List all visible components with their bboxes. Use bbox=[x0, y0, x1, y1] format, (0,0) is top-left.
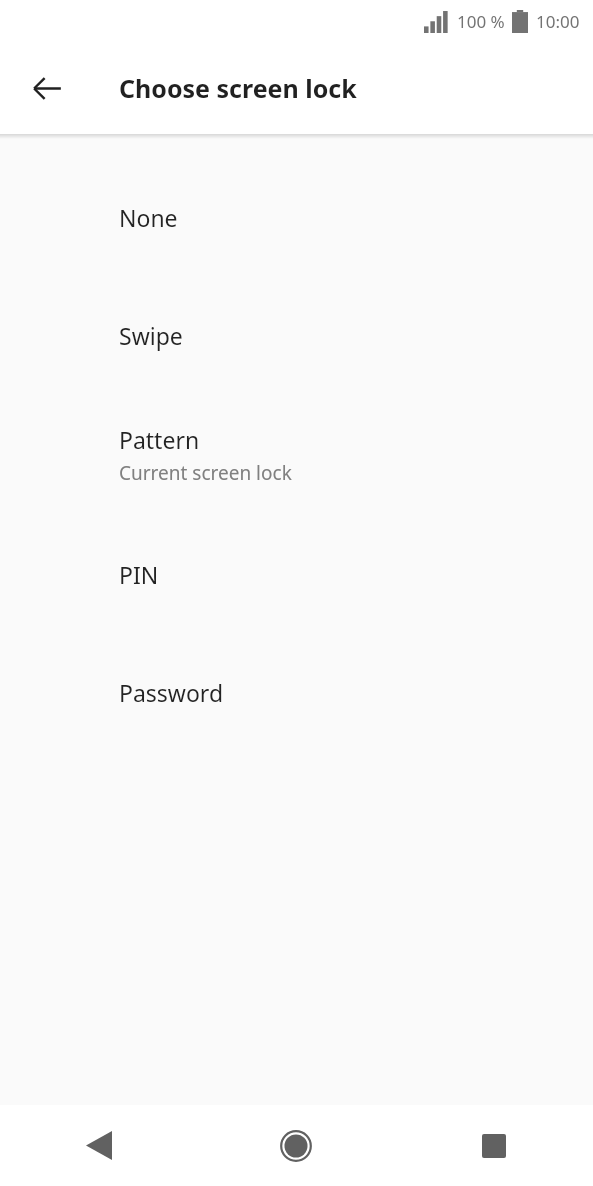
button[interactable]: Home bbox=[197, 1105, 395, 1186]
staticText: Password bbox=[119, 677, 224, 708]
staticText: 10:00 bbox=[536, 10, 580, 33]
staticText: PIN bbox=[119, 559, 159, 590]
staticText: 100 % bbox=[457, 10, 505, 33]
staticText: Pattern bbox=[119, 424, 200, 455]
button[interactable]: PIN bbox=[0, 515, 593, 633]
button[interactable]: Pattern bbox=[0, 394, 593, 515]
staticText: Swipe bbox=[119, 320, 183, 351]
staticText: Current screen lock bbox=[119, 460, 292, 486]
button[interactable]: Recent apps bbox=[395, 1105, 593, 1186]
button[interactable]: Back bbox=[23, 64, 71, 112]
staticText: None bbox=[119, 202, 178, 233]
button[interactable]: Password bbox=[0, 633, 593, 751]
staticText: Choose screen lock bbox=[119, 71, 357, 105]
button[interactable]: Back bbox=[0, 1105, 197, 1186]
button[interactable]: None bbox=[0, 158, 593, 276]
button[interactable]: Swipe bbox=[0, 276, 593, 394]
